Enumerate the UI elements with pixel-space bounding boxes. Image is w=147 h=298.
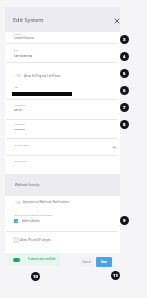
staticText: servicenow — [14, 53, 33, 58]
button[interactable]: Close — [111, 15, 122, 26]
staticText: Anonymous Webhook Notifications — [23, 200, 70, 204]
button[interactable] — [5, 82, 120, 99]
staticText: 6 — [123, 88, 126, 94]
staticText: Password — [14, 123, 25, 126]
staticText: Webhook Security — [15, 183, 40, 187]
button[interactable]: Connection verified — [8, 254, 60, 266]
staticText: 11 — [113, 273, 118, 279]
staticText: Allow IPs and IP ranges — [20, 238, 51, 242]
staticText: ••••••••••• — [14, 128, 26, 132]
staticText: 9 — [123, 218, 126, 224]
staticText: Lansdel Bassion — [14, 36, 35, 40]
staticText: Connection verified — [28, 257, 56, 261]
staticText: 8 — [123, 122, 126, 128]
staticText: 10 — [33, 274, 38, 280]
button[interactable]: Edit System — [5, 7, 105, 32]
staticText: 7 — [123, 105, 126, 111]
button[interactable] — [5, 99, 120, 120]
staticText: Admin Admin — [22, 219, 40, 223]
staticText: API Version — [14, 160, 27, 163]
button[interactable]: Show access token — [110, 143, 118, 151]
button[interactable]: Cancel — [79, 257, 94, 267]
staticText: 5 — [123, 71, 126, 77]
staticText: 4 — [123, 54, 126, 60]
staticText: Save — [101, 260, 108, 264]
staticText: Allow Self Signed Certificate — [24, 74, 61, 78]
staticText: Access Token — [14, 143, 30, 146]
button[interactable]: Webhook Security — [5, 174, 120, 196]
staticText: 3 — [123, 37, 126, 43]
staticText: User Account for Webhook Subscriptions — [14, 214, 53, 217]
button[interactable] — [5, 43, 120, 62]
button[interactable] — [5, 32, 120, 44]
button[interactable] — [5, 62, 120, 82]
button[interactable] — [5, 119, 120, 138]
staticText: Username — [14, 104, 26, 107]
button[interactable] — [5, 196, 120, 211]
staticText: Edit System — [13, 16, 44, 24]
button[interactable] — [5, 211, 120, 231]
button[interactable] — [5, 231, 120, 253]
button[interactable] — [5, 155, 120, 174]
button[interactable] — [5, 138, 120, 155]
staticText: Cancel — [82, 260, 91, 264]
staticText: URL — [14, 86, 19, 89]
staticText: admin — [14, 108, 23, 112]
staticText: Site — [14, 49, 18, 52]
button[interactable]: Save — [96, 257, 112, 267]
staticText: Name — [14, 33, 21, 36]
